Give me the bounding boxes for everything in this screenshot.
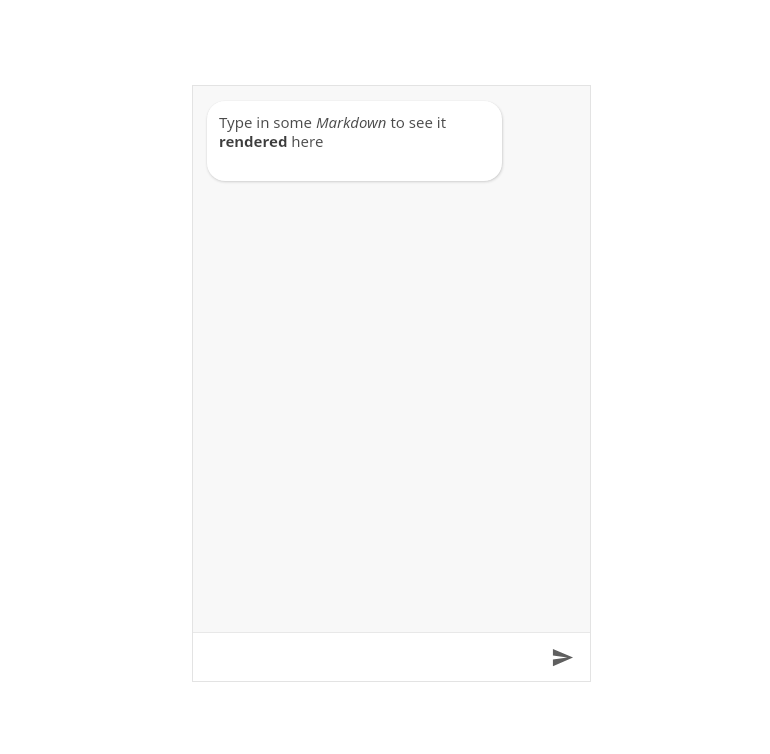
button[interactable]: Send	[542, 637, 582, 677]
button[interactable]: Type in some Markdown to see it rendered…	[207, 101, 502, 181]
staticText: Type in some Markdown to see it rendered…	[219, 112, 488, 151]
